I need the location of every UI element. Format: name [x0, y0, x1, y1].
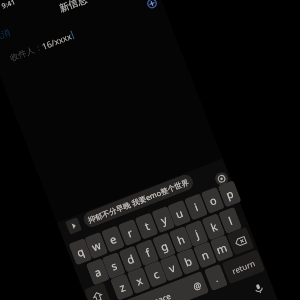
staticText: e [107, 231, 119, 247]
button[interactable]: v [159, 254, 183, 282]
button[interactable]: r [118, 219, 142, 246]
button[interactable]: 取消 [0, 27, 12, 44]
staticText: a [92, 263, 104, 280]
staticText: 新信息 [58, 0, 89, 15]
button[interactable]: z [110, 273, 134, 300]
button[interactable]: f [135, 239, 159, 266]
staticText: f [143, 245, 152, 260]
staticText: b [182, 253, 194, 270]
button[interactable]: h [169, 226, 193, 253]
button[interactable]: i [184, 193, 208, 221]
button[interactable]: Expand suggestions [65, 217, 82, 235]
button[interactable]: 抑郁不分早晚 我要emo整个世界 [81, 172, 195, 229]
staticText: t [142, 218, 152, 233]
staticText: m [214, 239, 230, 257]
staticText: s [109, 257, 120, 274]
button[interactable]: x [127, 267, 151, 294]
button[interactable]: t [134, 212, 159, 240]
button[interactable]: Shift [84, 282, 112, 300]
staticText: 16/xxxx [40, 30, 73, 53]
button[interactable]: u [167, 200, 191, 227]
staticText: g [158, 238, 170, 254]
button[interactable]: b [176, 248, 200, 275]
button[interactable]: Keyboard settings [213, 170, 230, 187]
button[interactable]: c [143, 260, 168, 288]
button[interactable]: 新信息 [58, 0, 89, 15]
button[interactable]: Backspace [226, 227, 254, 256]
button[interactable]: j [185, 220, 209, 247]
staticText: c [150, 266, 161, 282]
button[interactable]: d [118, 245, 143, 273]
staticText: p [224, 186, 236, 202]
staticText: v [166, 260, 177, 276]
staticText: 抑郁不分早晚 我要emo整个世界 [86, 177, 191, 225]
button[interactable]: s [102, 252, 126, 279]
button[interactable]: n [193, 241, 217, 269]
staticText: 收件人： [8, 41, 44, 64]
staticText: z [117, 279, 128, 295]
staticText: y [158, 211, 169, 227]
button[interactable]: m [210, 235, 234, 262]
staticText: x [134, 272, 145, 288]
staticText: j [193, 226, 201, 241]
button[interactable]: q [68, 238, 92, 265]
button[interactable]: y [151, 206, 175, 233]
button[interactable]: a [86, 258, 110, 286]
button[interactable]: return [221, 249, 265, 284]
button[interactable]: Dictation [249, 279, 267, 297]
staticText: 9:41 [0, 0, 17, 12]
staticText: d [124, 251, 136, 267]
button[interactable]: e [101, 225, 125, 253]
staticText: k [208, 219, 219, 235]
button[interactable]: o [201, 187, 225, 214]
staticText: r [125, 225, 135, 240]
staticText: i [192, 199, 200, 214]
button[interactable]: g [152, 232, 176, 260]
staticText: l [226, 213, 234, 228]
staticText: space [148, 290, 173, 300]
button[interactable]: space [124, 276, 197, 300]
button[interactable]: k [201, 213, 226, 241]
button[interactable]: @ [185, 271, 209, 298]
staticText: w [89, 237, 103, 254]
staticText: n [199, 247, 211, 263]
staticText: 取消 [0, 27, 12, 44]
button[interactable]: p [217, 180, 242, 208]
staticText: q [74, 243, 86, 260]
staticText: . [212, 272, 220, 284]
staticText: @ [191, 278, 204, 292]
staticText: u [173, 205, 185, 222]
button[interactable]: . [204, 264, 228, 291]
staticText: return [230, 257, 257, 276]
button[interactable]: Add contact [145, 0, 158, 10]
staticText: h [175, 231, 187, 248]
staticText: o [207, 192, 219, 209]
button[interactable]: w [84, 232, 108, 259]
button[interactable]: l [218, 207, 242, 234]
